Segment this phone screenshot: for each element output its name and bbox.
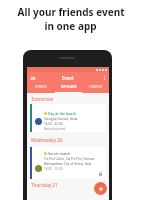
staticText: Nobody joined [44, 127, 66, 131]
staticText: 18.00 - 19.00 [44, 167, 63, 171]
staticText: Spiaggia Genova, Italia [44, 117, 78, 121]
staticText: Soccer match [48, 151, 71, 156]
staticText: in one app [44, 19, 97, 33]
staticText: FRIENDS [89, 85, 103, 89]
button[interactable]: Create event [94, 182, 107, 195]
staticText: Thursday 21 [31, 182, 58, 188]
staticText: Day at the beach [48, 111, 77, 116]
button[interactable]: Open navigation menu [30, 75, 36, 81]
staticText: All your friends event [17, 5, 125, 19]
staticText: 16.00 - 22.00 [44, 122, 63, 126]
button[interactable]: EVENTS [27, 83, 55, 93]
staticText: EVENTS [35, 85, 47, 89]
button[interactable]: Soccer match [30, 147, 106, 179]
staticText: Tomorrow [31, 96, 54, 102]
button[interactable]: FRIENDS [82, 83, 109, 93]
button[interactable]: More options [103, 75, 106, 81]
button[interactable]: MY PLANS [55, 83, 82, 93]
staticText: Tre Pini Calcio, Via Tre Pini, Genova [44, 157, 95, 161]
staticText: Event [62, 75, 74, 81]
button[interactable]: Day at the beach [30, 104, 106, 132]
staticText: Metropolitan City of Genoa, Italy [44, 162, 92, 166]
staticText: MY PLANS [61, 85, 77, 89]
staticText: Wednesday 20 [31, 137, 63, 143]
